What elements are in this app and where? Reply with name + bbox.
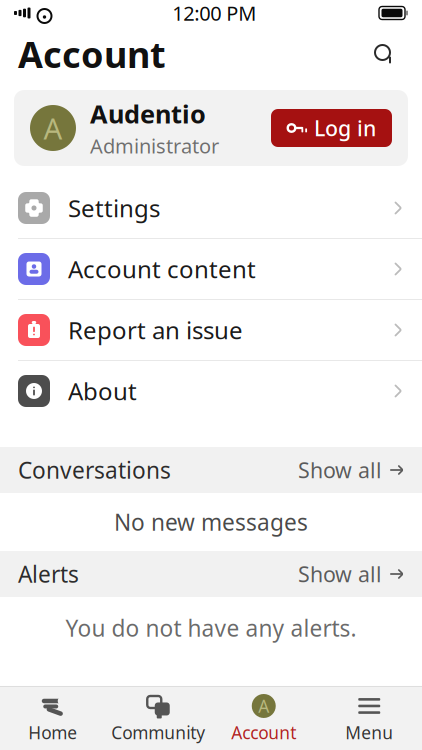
- staticText: A: [43, 108, 62, 147]
- button[interactable]: Settings: [0, 178, 422, 238]
- staticText: 12:00 PM: [172, 0, 256, 26]
- button[interactable]: Community: [105, 687, 211, 750]
- staticText: Settings: [68, 192, 160, 224]
- button[interactable]: Log in: [271, 109, 392, 147]
- button[interactable]: Show all: [298, 456, 404, 484]
- button[interactable]: About: [0, 361, 422, 421]
- staticText: Show all: [298, 456, 382, 484]
- staticText: Account: [18, 30, 166, 78]
- button[interactable]: Menu: [316, 687, 422, 750]
- staticText: Audentio: [90, 97, 206, 130]
- staticText: Community: [111, 721, 205, 744]
- staticText: Alerts: [18, 559, 79, 589]
- staticText: About: [68, 375, 137, 407]
- staticText: Administrator: [90, 132, 219, 159]
- staticText: Show all: [298, 560, 382, 588]
- staticText: Menu: [345, 721, 393, 744]
- staticText: Account: [231, 721, 296, 744]
- staticText: Conversations: [18, 455, 171, 485]
- button[interactable]: A: [211, 687, 316, 750]
- button[interactable]: Search: [364, 34, 404, 74]
- staticText: No new messages: [114, 507, 308, 537]
- staticText: Log in: [314, 114, 376, 142]
- staticText: Account content: [68, 253, 256, 285]
- button[interactable]: Show all: [298, 560, 404, 588]
- staticText: Report an issue: [68, 314, 243, 346]
- button[interactable]: Account content: [0, 239, 422, 299]
- staticText: A: [258, 694, 269, 717]
- staticText: You do not have any alerts.: [65, 613, 356, 643]
- button[interactable]: Home: [0, 687, 105, 750]
- button[interactable]: Report an issue: [0, 300, 422, 360]
- staticText: Home: [28, 721, 77, 744]
